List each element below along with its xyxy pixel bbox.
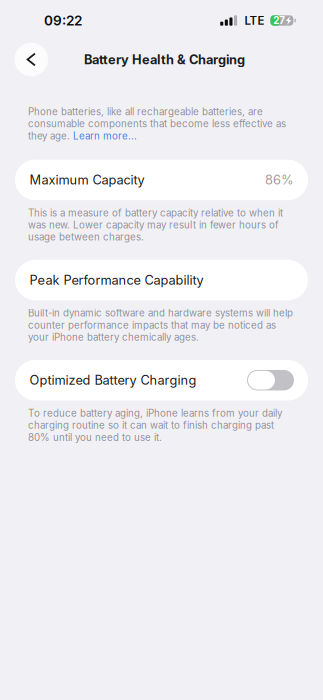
staticText: Optimized Battery Charging: [29, 373, 196, 388]
staticText: Maximum Capacity: [29, 172, 144, 187]
staticText: This is a measure of battery capacity re…: [28, 207, 283, 243]
button[interactable]: Peak Performance Capability: [15, 260, 308, 300]
staticText: To reduce battery aging, iPhone learns f…: [28, 407, 282, 443]
button[interactable]: Maximum Capacity: [15, 160, 308, 200]
staticText: Battery Health & Charging: [84, 52, 245, 67]
staticText: LTE: [244, 14, 264, 27]
staticText: Peak Performance Capability: [29, 272, 203, 288]
staticText: 09:22: [44, 12, 82, 28]
staticText: Built-in dynamic software and hardware s…: [28, 307, 293, 343]
button[interactable]: Back: [14, 43, 48, 76]
staticText: 27: [273, 15, 285, 26]
button[interactable]: Optimized Battery Charging: [15, 360, 308, 400]
staticText: Phone batteries, like all rechargeable b…: [28, 106, 286, 142]
staticText: 86%: [265, 172, 294, 187]
